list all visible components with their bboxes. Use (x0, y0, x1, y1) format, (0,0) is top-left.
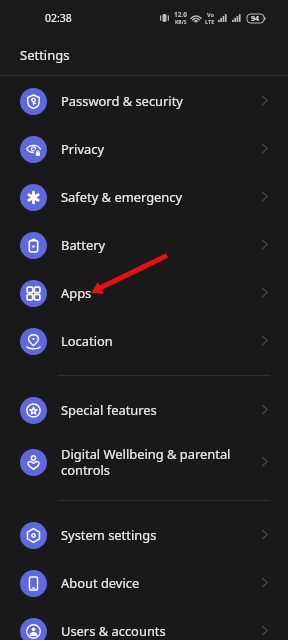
button[interactable]: Location (0, 317, 288, 365)
staticText: Battery (61, 236, 254, 254)
staticText: LTE (205, 18, 215, 25)
staticText: KB/S (175, 19, 187, 26)
button[interactable]: Safety & emergency (0, 173, 288, 221)
button[interactable]: Digital Wellbeing & parental controls (0, 434, 288, 490)
staticText: Password & security (61, 92, 254, 110)
button[interactable]: Users & accounts (0, 607, 288, 640)
staticText: Location (61, 332, 254, 350)
button[interactable]: System settings (0, 511, 288, 559)
button[interactable]: Battery (0, 221, 288, 269)
staticText: Digital Wellbeing & parental controls (61, 445, 254, 479)
button[interactable]: About device (0, 559, 288, 607)
staticText: 12.0 (174, 10, 187, 19)
staticText: Vo (207, 11, 214, 18)
staticText: Settings (20, 46, 70, 64)
staticText: Special features (61, 401, 254, 419)
button[interactable]: Privacy (0, 125, 288, 173)
staticText: 94 (251, 14, 260, 23)
staticText: About device (61, 574, 254, 592)
staticText: Safety & emergency (61, 188, 254, 206)
button[interactable]: Special features (0, 386, 288, 434)
staticText: System settings (61, 526, 254, 544)
staticText: 02:38 (45, 11, 72, 25)
button[interactable]: Password & security (0, 77, 288, 125)
staticText: Users & accounts (61, 622, 254, 640)
staticText: Apps (61, 284, 254, 302)
button[interactable]: Apps (0, 269, 288, 317)
staticText: Privacy (61, 140, 254, 158)
